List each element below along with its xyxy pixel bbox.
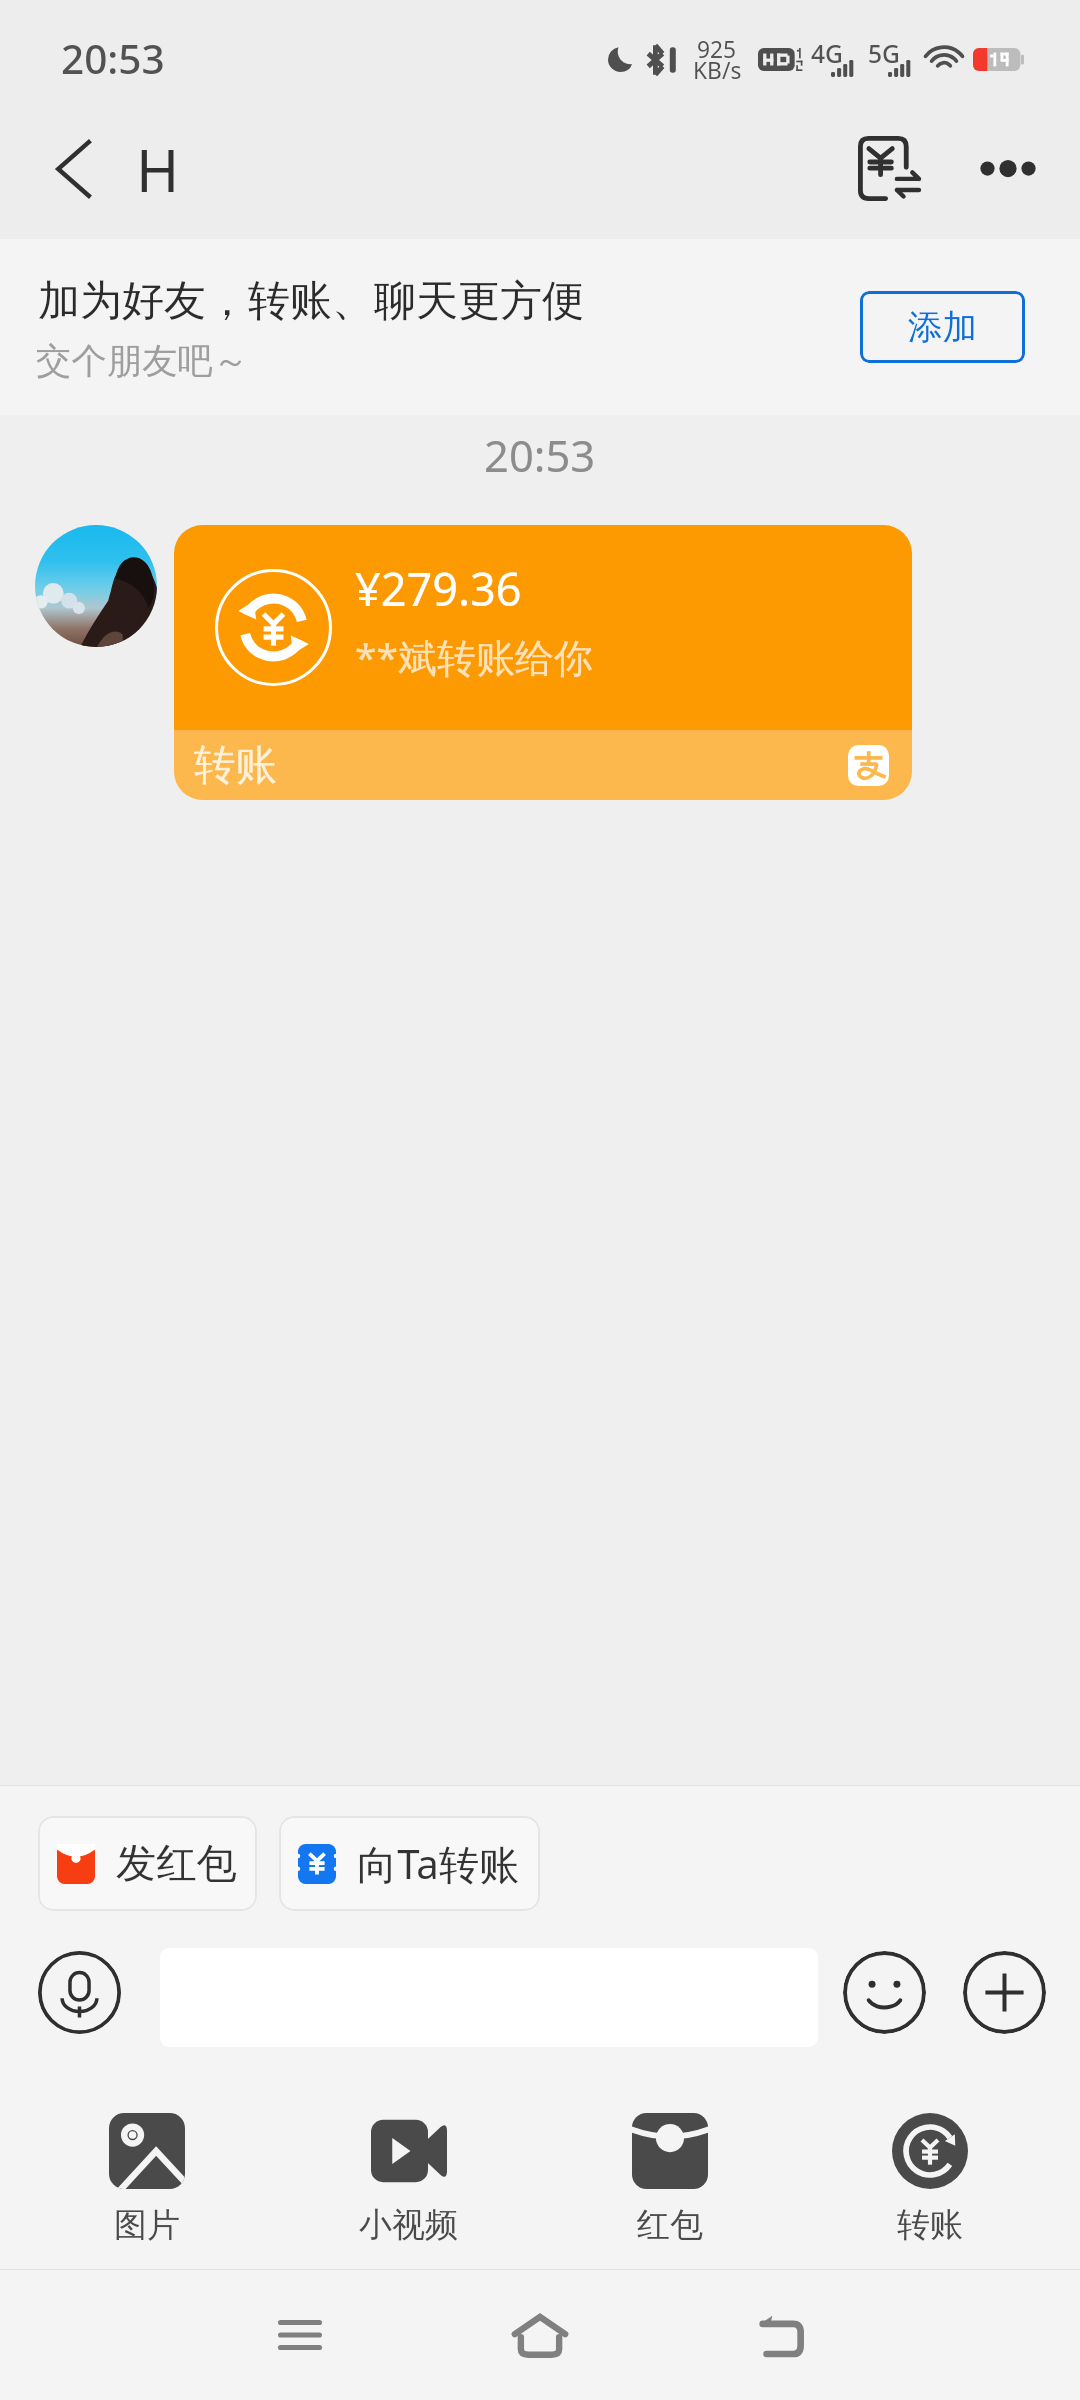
button[interactable]: Back to chat list <box>28 109 180 229</box>
staticText: 向Ta转账 <box>357 1836 520 1891</box>
button[interactable]: Transfer records <box>843 120 939 216</box>
staticText: H <box>136 129 180 209</box>
button[interactable]: 小视频 <box>335 2113 482 2246</box>
staticText: KB/s <box>693 55 741 86</box>
button[interactable]: Recent apps <box>240 2275 360 2395</box>
staticText: 加为好友，转账、聊天更方便 <box>38 275 584 328</box>
staticText: 交个朋友吧～ <box>36 339 249 384</box>
button[interactable]: Contact avatar <box>35 525 157 647</box>
staticText: 20:53 <box>484 425 596 484</box>
staticText: 925 <box>697 34 737 65</box>
staticText: 转账 <box>194 739 277 791</box>
button[interactable]: Add attachment <box>963 1951 1046 2034</box>
staticText: 4G <box>811 37 843 71</box>
button[interactable]: Emoji <box>843 1951 926 2034</box>
button[interactable] <box>0 239 1080 415</box>
staticText: **斌转账给你 <box>355 630 593 683</box>
button[interactable]: Home <box>480 2275 600 2395</box>
staticText: 图片 <box>114 2204 180 2246</box>
staticText: 发红包 <box>116 1838 237 1889</box>
button[interactable]: More options <box>960 120 1056 216</box>
button[interactable]: Back <box>720 2275 840 2395</box>
staticText: ¥279.36 <box>355 558 522 619</box>
button[interactable]: 红包 <box>596 2113 743 2246</box>
staticText: 小视频 <box>359 2204 458 2246</box>
staticText: 5G <box>868 37 900 71</box>
button[interactable]: 向Ta转账 <box>279 1816 540 1911</box>
staticText: 转账 <box>897 2204 963 2246</box>
staticText: 20:53 <box>61 31 165 86</box>
button[interactable]: 发红包 <box>38 1816 257 1911</box>
button[interactable]: 添加 <box>860 291 1025 363</box>
button[interactable]: Voice message <box>38 1951 121 2034</box>
button[interactable]: 图片 <box>73 2113 220 2246</box>
button[interactable]: 转账 <box>856 2113 1003 2246</box>
staticText: 添加 <box>908 306 977 349</box>
button[interactable]: ¥279.36 <box>174 525 912 800</box>
staticText: 红包 <box>637 2204 703 2246</box>
